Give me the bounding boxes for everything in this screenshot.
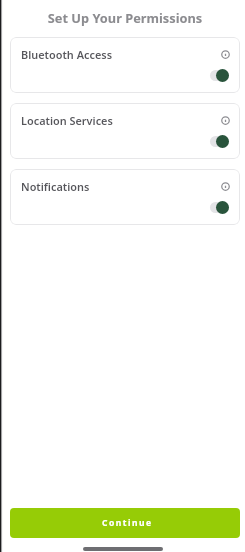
staticText: Notifications xyxy=(21,179,90,194)
staticText: Continue xyxy=(102,517,153,529)
staticText: Set Up Your Permissions xyxy=(10,9,240,26)
button[interactable]: Location Services xyxy=(10,103,240,159)
button[interactable]: Toggle Location Services xyxy=(210,132,236,150)
button[interactable]: Info about Location Services xyxy=(217,112,233,128)
button[interactable]: Bluetooth Access xyxy=(10,37,240,93)
button[interactable]: Notifications xyxy=(10,169,240,225)
button[interactable]: Toggle Notifications xyxy=(210,198,236,216)
button[interactable]: Toggle Bluetooth Access xyxy=(210,66,236,84)
button[interactable]: Info about Bluetooth Access xyxy=(217,46,233,62)
button[interactable]: Info about Notifications xyxy=(217,178,233,194)
button[interactable]: Continue xyxy=(10,508,240,538)
staticText: Bluetooth Access xyxy=(21,47,113,62)
staticText: Location Services xyxy=(21,113,113,128)
